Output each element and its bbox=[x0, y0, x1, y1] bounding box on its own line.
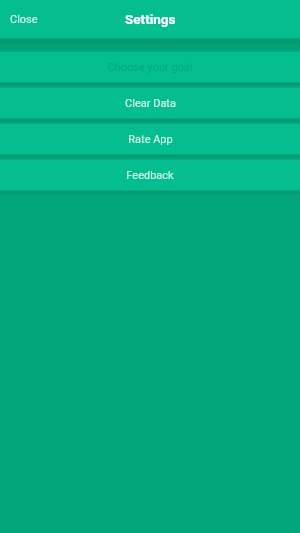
staticText: Close bbox=[10, 13, 38, 26]
staticText: Rate App bbox=[128, 133, 173, 146]
button[interactable]: Rate App bbox=[0, 124, 300, 154]
button[interactable]: Close bbox=[0, 0, 50, 38]
staticText: Feedback bbox=[126, 169, 174, 182]
staticText: Clear Data bbox=[125, 97, 176, 110]
staticText: Choose your goal bbox=[107, 61, 193, 74]
staticText: Settings bbox=[125, 11, 176, 27]
button[interactable]: Feedback bbox=[0, 160, 300, 190]
button[interactable]: Clear Data bbox=[0, 88, 300, 118]
